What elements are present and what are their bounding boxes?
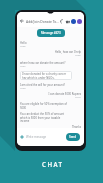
- button[interactable]: Profile one: [71, 19, 76, 24]
- staticText: CHAT: [42, 160, 64, 168]
- button[interactable]: Back: [19, 18, 25, 24]
- staticText: 12:10: [75, 96, 81, 99]
- button[interactable]: Send: [66, 133, 80, 141]
- staticText: Message #473: [41, 31, 61, 35]
- button[interactable]: Message #473: [37, 29, 65, 37]
- staticText: Thanks: [71, 125, 81, 129]
- staticText: I have donated for a charity concer hey …: [22, 72, 70, 79]
- staticText: Send: [69, 135, 77, 139]
- staticText: 12:09: [20, 87, 26, 90]
- staticText: where how can donate the amount?: [20, 61, 66, 65]
- staticText: I can donate 5000 Rupees: [48, 92, 81, 96]
- button[interactable]: Call: [60, 19, 65, 24]
- button[interactable]: Profile two: [77, 19, 82, 24]
- staticText: Hello: [20, 41, 27, 45]
- staticText: 12:07: [20, 65, 26, 68]
- button[interactable]: Add attachment: [19, 134, 25, 140]
- staticText: You are eligible for 50% exemption of 50…: [20, 102, 69, 109]
- button[interactable]: Video call: [65, 19, 70, 24]
- staticText: Hello, how can I help: [54, 50, 81, 54]
- staticText: I am cited the will for your amount?: [20, 83, 65, 87]
- staticText: 12:06: [75, 54, 81, 57]
- staticText: Write message: [26, 135, 47, 139]
- staticText: Add/Join Donate To...: [26, 19, 60, 23]
- staticText: You can deduct the 50% of amount which i…: [20, 112, 69, 122]
- staticText: 12:05: [20, 45, 26, 48]
